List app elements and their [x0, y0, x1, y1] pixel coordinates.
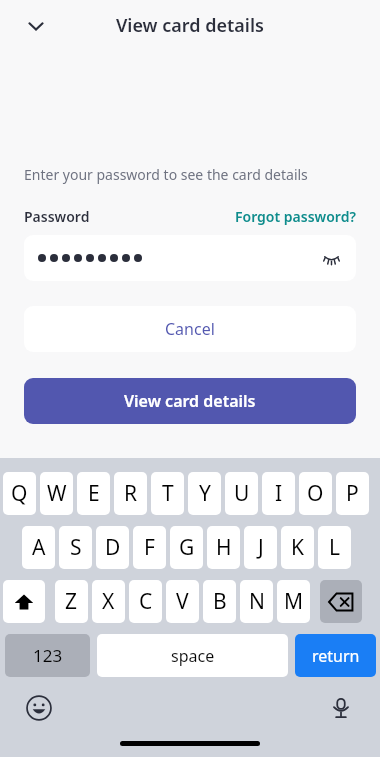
button[interactable]: space — [97, 634, 288, 677]
staticText: E — [88, 479, 100, 508]
button[interactable]: H — [207, 526, 240, 569]
button[interactable]: W — [40, 472, 73, 515]
staticText: W — [47, 479, 67, 508]
button[interactable]: L — [318, 526, 351, 569]
staticText: V — [176, 587, 189, 616]
staticText: B — [213, 587, 227, 616]
button[interactable]: N — [240, 580, 273, 623]
staticText: Cancel — [165, 318, 215, 340]
staticText: Password — [24, 207, 90, 226]
button[interactable]: R — [114, 472, 147, 515]
button[interactable]: F — [133, 526, 166, 569]
button[interactable]: Z — [55, 580, 88, 623]
button[interactable]: Backspace — [320, 580, 362, 623]
button[interactable]: T — [151, 472, 184, 515]
staticText: Y — [199, 479, 211, 508]
button[interactable]: P — [336, 472, 369, 515]
button[interactable]: 123 — [5, 634, 90, 677]
button[interactable]: S — [59, 526, 92, 569]
staticText: D — [105, 533, 121, 562]
staticText: space — [171, 645, 215, 667]
staticText: return — [312, 645, 360, 667]
staticText: Q — [11, 479, 28, 508]
button[interactable]: U — [225, 472, 258, 515]
staticText: View card details — [124, 390, 256, 412]
staticText: X — [102, 587, 115, 616]
button[interactable]: I — [262, 472, 295, 515]
button[interactable]: O — [299, 472, 332, 515]
staticText: Forgot password? — [235, 207, 356, 226]
button[interactable]: Show password — [24, 235, 356, 281]
button[interactable]: Y — [188, 472, 221, 515]
button[interactable]: A — [22, 526, 55, 569]
button[interactable]: Show password — [318, 245, 344, 271]
staticText: G — [179, 533, 195, 562]
staticText: T — [162, 479, 174, 508]
staticText: H — [216, 533, 232, 562]
button[interactable]: Emoji keyboard — [22, 691, 56, 725]
button[interactable]: M — [277, 580, 310, 623]
button[interactable]: Q — [3, 472, 36, 515]
staticText: J — [258, 533, 264, 562]
button[interactable]: V — [166, 580, 199, 623]
button[interactable]: Voice input — [324, 691, 358, 725]
staticText: A — [32, 533, 46, 562]
button[interactable]: return — [295, 634, 376, 677]
staticText: M — [284, 587, 304, 616]
staticText: 123 — [33, 644, 63, 667]
button[interactable]: K — [281, 526, 314, 569]
button[interactable]: J — [244, 526, 277, 569]
button[interactable]: C — [129, 580, 162, 623]
button[interactable]: X — [92, 580, 125, 623]
staticText: Enter your password to see the card deta… — [24, 165, 308, 184]
staticText: C — [139, 587, 153, 616]
staticText: I — [275, 479, 283, 508]
staticText: S — [70, 533, 82, 562]
button[interactable]: Close — [16, 10, 56, 42]
staticText: Z — [65, 587, 78, 616]
button[interactable]: Forgot password? — [235, 207, 356, 226]
button[interactable]: Cancel — [24, 306, 356, 352]
staticText: N — [249, 587, 265, 616]
staticText: L — [329, 533, 341, 562]
staticText: K — [291, 533, 304, 562]
button[interactable]: D — [96, 526, 129, 569]
button[interactable]: B — [203, 580, 236, 623]
button[interactable]: G — [170, 526, 203, 569]
staticText: R — [124, 479, 138, 508]
staticText: View card details — [116, 13, 264, 38]
staticText: O — [307, 479, 324, 508]
button[interactable]: Shift — [3, 580, 45, 623]
button[interactable]: E — [77, 472, 110, 515]
staticText: U — [234, 479, 250, 508]
staticText: F — [144, 533, 155, 562]
staticText: P — [346, 479, 359, 508]
button[interactable]: View card details — [24, 378, 356, 424]
